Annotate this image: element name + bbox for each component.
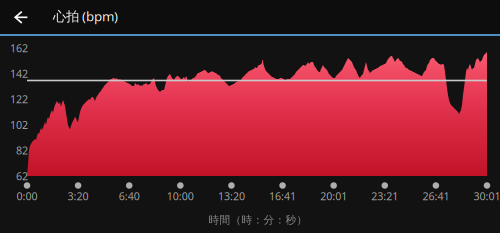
- staticText: 162: [10, 41, 28, 55]
- staticText: 122: [10, 92, 28, 106]
- staticText: 13:20: [218, 189, 245, 203]
- staticText: 0:00: [16, 189, 37, 203]
- staticText: 23:21: [371, 189, 398, 203]
- staticText: 102: [10, 118, 28, 132]
- staticText: 時間（時：分：秒）: [208, 213, 307, 226]
- staticText: 10:00: [167, 189, 194, 203]
- staticText: 142: [10, 66, 28, 81]
- staticText: 心拍 (bpm): [53, 7, 118, 25]
- staticText: 20:01: [320, 189, 347, 203]
- button[interactable]: Back: [0, 0, 44, 34]
- staticText: 3:20: [68, 189, 89, 203]
- staticText: 6:40: [119, 189, 140, 203]
- staticText: 26:41: [422, 189, 449, 203]
- staticText: 30:01: [473, 189, 500, 203]
- staticText: 62: [16, 169, 28, 183]
- staticText: 82: [16, 143, 28, 157]
- staticText: 16:41: [269, 189, 296, 203]
